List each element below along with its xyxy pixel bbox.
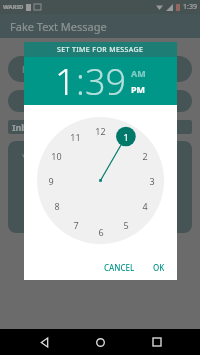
- staticText: 1: [123, 131, 129, 143]
- staticText: 1:39: [183, 2, 197, 12]
- button[interactable]: CANCEL: [98, 259, 141, 276]
- staticText: You: [22, 151, 38, 163]
- staticText: PM: [131, 83, 146, 95]
- staticText: 2: [142, 150, 148, 162]
- staticText: R: [22, 63, 28, 75]
- staticText: 4: [142, 200, 148, 212]
- staticText: 7: [73, 219, 79, 231]
- staticText: 11: [70, 131, 81, 143]
- staticText: 9: [48, 175, 54, 187]
- staticText: WARID: [3, 3, 24, 11]
- staticText: 8: [54, 200, 60, 212]
- button[interactable]: Inbox: [8, 120, 192, 134]
- staticText: 3: [149, 175, 155, 187]
- button[interactable]: Back: [31, 329, 57, 355]
- button[interactable]: Clock face, hour selection: [37, 117, 164, 244]
- staticText: OK: [153, 262, 165, 273]
- button[interactable]: OK: [147, 259, 171, 276]
- button[interactable]: Recent apps: [144, 329, 170, 355]
- staticText: 5: [123, 219, 129, 231]
- staticText: 10: [51, 150, 62, 162]
- staticText: Inbox: [12, 121, 38, 133]
- staticText: CANCEL: [104, 262, 135, 273]
- staticText: AM: [131, 67, 146, 79]
- button[interactable]: PM: [131, 83, 146, 95]
- button[interactable]: AM: [131, 67, 146, 79]
- button[interactable]: [8, 90, 192, 112]
- staticText: SET TIME FOR MESSAGE: [57, 45, 144, 55]
- staticText: 12: [95, 125, 106, 137]
- button[interactable]: R: [8, 56, 192, 82]
- staticText: :: [76, 57, 85, 105]
- button[interactable]: 39: [85, 57, 127, 105]
- staticText: 6: [98, 226, 104, 238]
- button[interactable]: Home: [87, 329, 113, 355]
- button[interactable]: You: [8, 141, 192, 233]
- staticText: Fake Text Message: [10, 19, 107, 34]
- button[interactable]: 1: [55, 57, 76, 105]
